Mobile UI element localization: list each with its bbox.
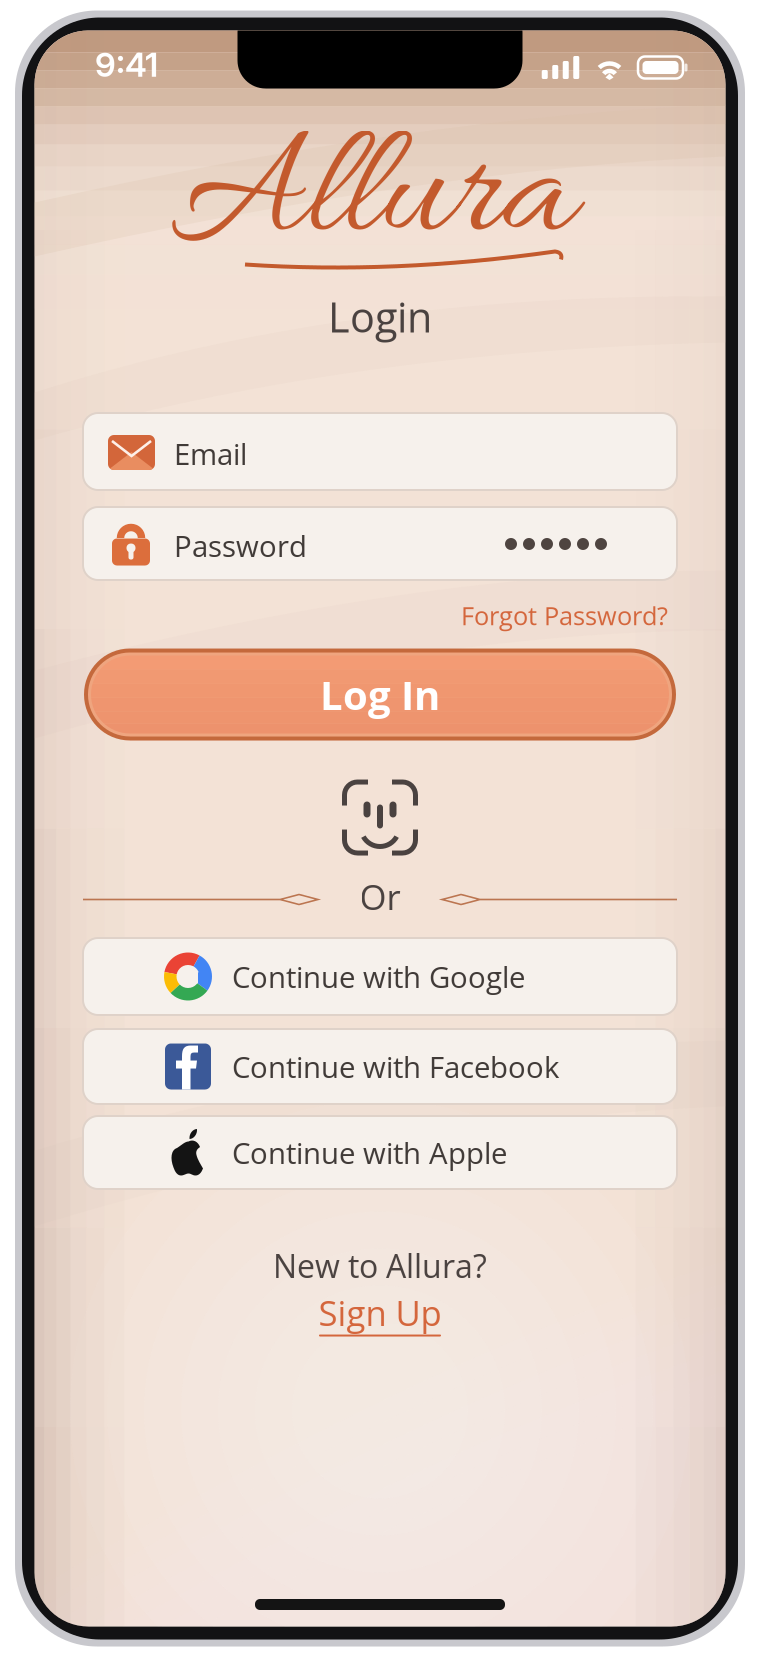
button[interactable]: Continue with Google (83, 938, 677, 1015)
staticText: Allura (170, 99, 573, 299)
staticText: Continue with Facebook (232, 1046, 559, 1086)
button[interactable]: Sign Up (317, 1292, 443, 1342)
staticText: 9:41 (95, 44, 158, 85)
staticText: Login (328, 288, 432, 345)
button[interactable]: Log In (84, 648, 676, 740)
button[interactable]: Continue with Apple (83, 1116, 677, 1189)
staticText: Continue with Google (232, 956, 525, 996)
button[interactable]: Password (83, 507, 677, 580)
staticText: Log In (320, 667, 440, 722)
staticText: Password (174, 525, 307, 565)
staticText: Sign Up (318, 1289, 441, 1336)
staticText: New to Allura? (273, 1244, 487, 1287)
staticText: Forgot Password? (461, 598, 668, 633)
button[interactable]: Email (83, 413, 677, 490)
staticText: Or (359, 873, 400, 920)
button[interactable]: Continue with Facebook (83, 1029, 677, 1104)
button[interactable]: Forgot Password? (461, 598, 668, 633)
staticText: Continue with Apple (232, 1132, 507, 1172)
staticText: Email (174, 433, 247, 473)
button[interactable]: Sign in with Face ID (342, 779, 418, 855)
